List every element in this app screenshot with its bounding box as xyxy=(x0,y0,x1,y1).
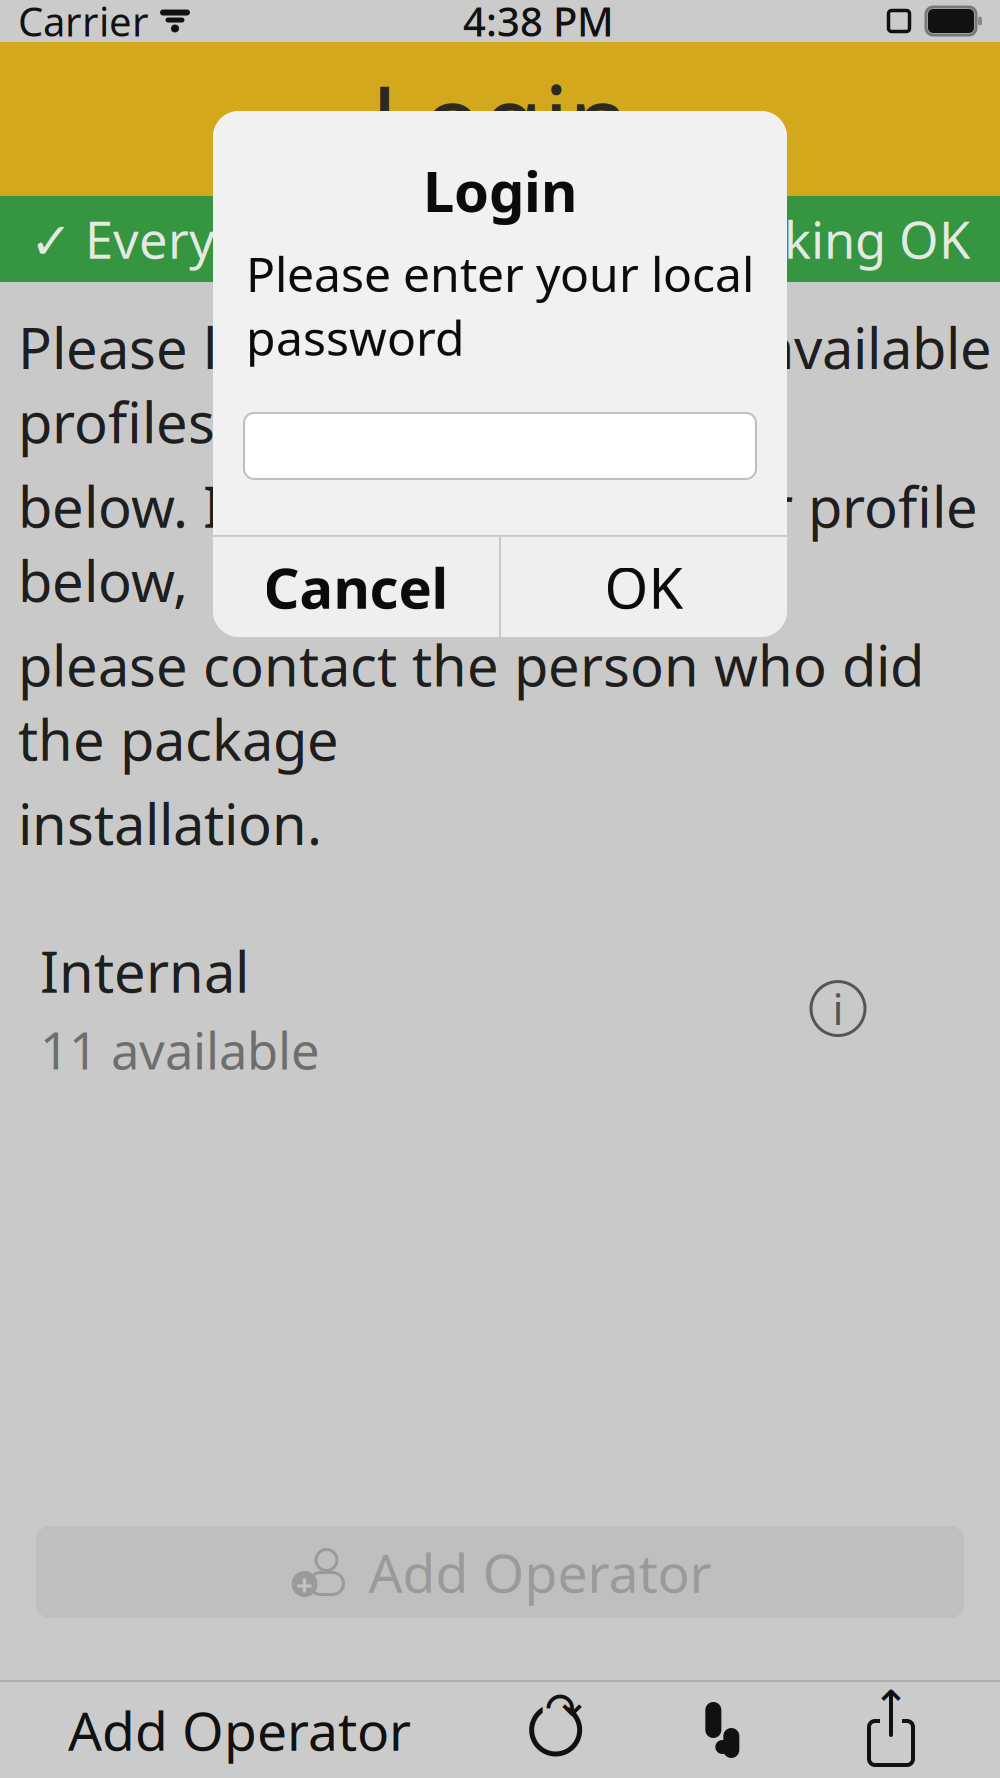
staticText: Login xyxy=(423,153,577,227)
staticText: 11 available xyxy=(40,1016,320,1083)
staticText: Login xyxy=(370,53,629,184)
staticText: please contact the person who did the pa… xyxy=(18,627,924,776)
staticText: Add Operator xyxy=(68,1695,411,1765)
button[interactable]: Refresh xyxy=(511,1685,601,1775)
staticText: ↷ xyxy=(545,1683,583,1735)
staticText: ✓ Everything appears to be working OK xyxy=(30,205,970,273)
button[interactable]: Internal xyxy=(18,949,982,1069)
staticText: i xyxy=(832,980,843,1037)
staticText: installation. xyxy=(18,786,322,861)
staticText: Internal xyxy=(40,934,249,1008)
staticText: ⌃ xyxy=(872,1681,910,1733)
staticText: Add Operator xyxy=(368,1537,711,1607)
button[interactable]: Share xyxy=(846,1685,936,1775)
button[interactable]: More info xyxy=(808,979,868,1039)
staticText: 4:38 PM xyxy=(463,0,614,47)
button[interactable]: Cancel xyxy=(213,537,499,637)
button[interactable]: Add Operator xyxy=(46,1682,433,1778)
staticText: Carrier xyxy=(18,0,149,47)
staticText: OK xyxy=(604,550,683,624)
staticText: + xyxy=(296,1564,313,1603)
button[interactable]: + xyxy=(36,1526,964,1618)
staticText: Cancel xyxy=(263,550,448,624)
staticText: Please enter your local password xyxy=(246,241,754,369)
button[interactable]: OK xyxy=(501,537,787,637)
staticText: below. If you cannot see your profile be… xyxy=(18,469,978,617)
button[interactable]: Call xyxy=(678,1685,768,1775)
staticText: Please login with one of the available p… xyxy=(18,310,992,459)
